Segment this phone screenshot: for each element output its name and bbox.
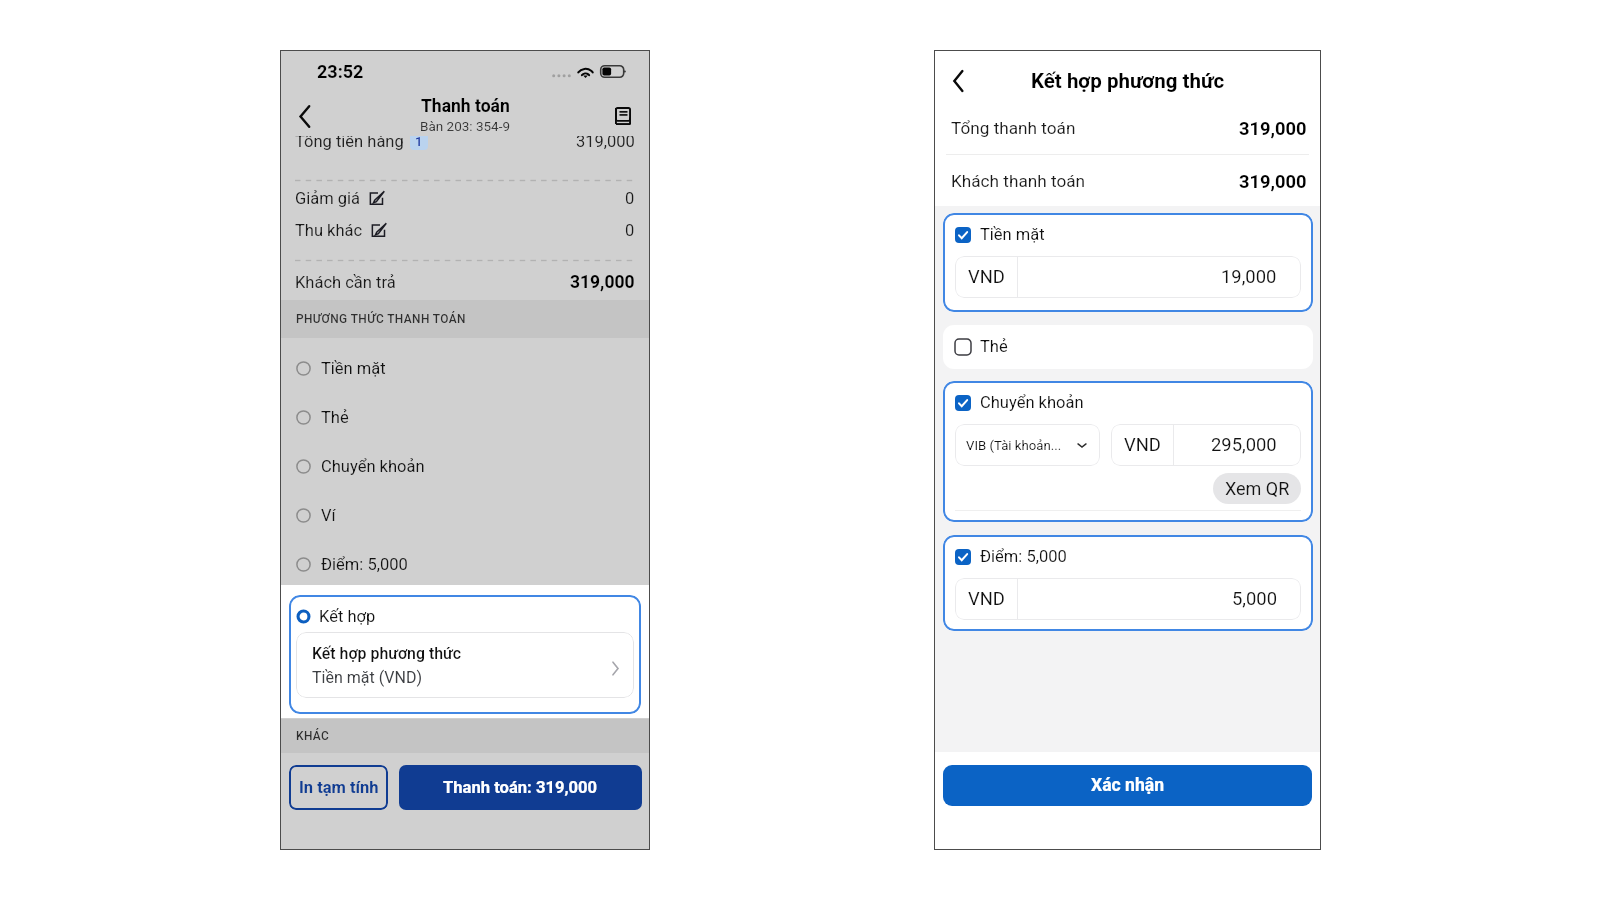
button[interactable]: Edit Giảm giá [369,191,384,205]
button[interactable]: In tạm tính [289,765,388,810]
button[interactable]: Điểm: 5,000 [280,540,650,589]
button[interactable]: Thẻ [943,325,1313,369]
button[interactable]: Kết hợp phương thức [296,632,634,698]
staticText: Điểm: 5,000 [321,555,408,574]
button[interactable]: 295,000 [1174,424,1301,466]
button[interactable]: 5,000 [1018,578,1301,620]
button[interactable]: VIB (Tài khoản... [955,424,1100,466]
button[interactable]: Edit Thu khác [371,223,386,237]
staticText: Thanh toán: 319,000 [443,778,598,797]
staticText: Khách cần trả [295,273,396,292]
staticText: VIB (Tài khoản... [966,438,1062,453]
staticText: 19,000 [1221,266,1277,288]
staticText: Kết hợp phương thức [1031,69,1225,93]
staticText: Thu khác [295,221,363,240]
staticText: Tiền mặt [980,225,1045,244]
button[interactable]: Back [286,97,324,135]
staticText: 5,000 [1232,588,1277,610]
staticText: 23:52 [317,61,364,82]
staticText: KHÁC [296,729,330,743]
staticText: Khách thanh toán [951,171,1086,191]
button[interactable]: Thanh toán: 319,000 [399,765,642,810]
staticText: Chuyển khoản [321,457,425,476]
staticText: Thanh toán [421,96,510,117]
staticText: VND [1124,434,1161,456]
button[interactable]: Điểm: 5,000 [943,535,1313,631]
button[interactable]: Chuyển khoản [280,442,650,491]
staticText: 0 [625,189,635,208]
staticText: Tổng thanh toán [951,118,1076,138]
staticText: Ví [321,506,336,525]
button[interactable]: Kết hợp [289,595,641,714]
button[interactable]: Xác nhận [943,765,1312,806]
staticText: Xem QR [1225,478,1290,499]
staticText: 319,000 [1239,118,1307,139]
button[interactable]: Tiền mặt [943,213,1313,312]
staticText: Tiền mặt (VND) [312,668,422,687]
button[interactable]: Xem QR [1213,473,1301,504]
staticText: 319,000 [570,272,635,293]
button[interactable]: Thẻ [280,393,650,442]
staticText: Thẻ [980,337,1008,356]
button[interactable]: Back [940,63,976,99]
staticText: Điểm: 5,000 [980,547,1067,566]
staticText: 319,000 [576,132,635,151]
staticText: Tổng tiền hàng [295,132,404,151]
staticText: 295,000 [1211,434,1277,456]
staticText: Thẻ [321,408,349,427]
staticText: Bàn 203: 354-9 [420,118,511,134]
staticText: Kết hợp phương thức [312,644,462,663]
button[interactable]: Ví [280,491,650,540]
staticText: PHƯƠNG THỨC THANH TOÁN [296,312,466,326]
staticText: Chuyển khoản [980,393,1084,412]
staticText: VND [968,588,1005,610]
button[interactable]: Order notes [607,100,639,132]
staticText: Kết hợp [319,607,376,626]
staticText: VND [968,266,1005,288]
button[interactable]: Tiền mặt [280,344,650,393]
staticText: Tiền mặt [321,359,386,378]
staticText: 0 [625,221,635,240]
button[interactable]: 19,000 [1018,256,1301,298]
staticText: 319,000 [1239,171,1307,192]
staticText: Giảm giá [295,189,361,208]
button[interactable]: Chuyển khoản [943,381,1313,522]
staticText: 1 [415,134,423,149]
staticText: In tạm tính [299,778,379,797]
staticText: Xác nhận [1091,775,1165,796]
